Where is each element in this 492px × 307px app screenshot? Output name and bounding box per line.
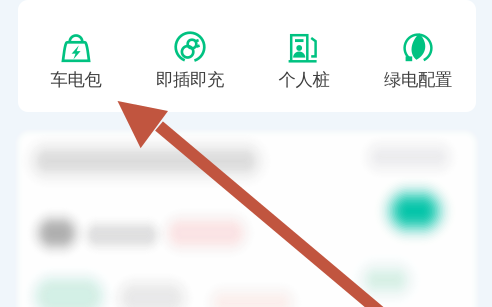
- button[interactable]: 车电包: [19, 0, 133, 112]
- button[interactable]: 个人桩: [247, 0, 361, 112]
- button[interactable]: 即插即充: [133, 0, 247, 112]
- staticText: 车电包: [50, 69, 101, 90]
- staticText: 绿电配置: [384, 69, 452, 90]
- staticText: 即插即充: [156, 69, 224, 90]
- button[interactable]: 绿电配置: [361, 0, 475, 112]
- staticText: 个人桩: [278, 69, 329, 90]
